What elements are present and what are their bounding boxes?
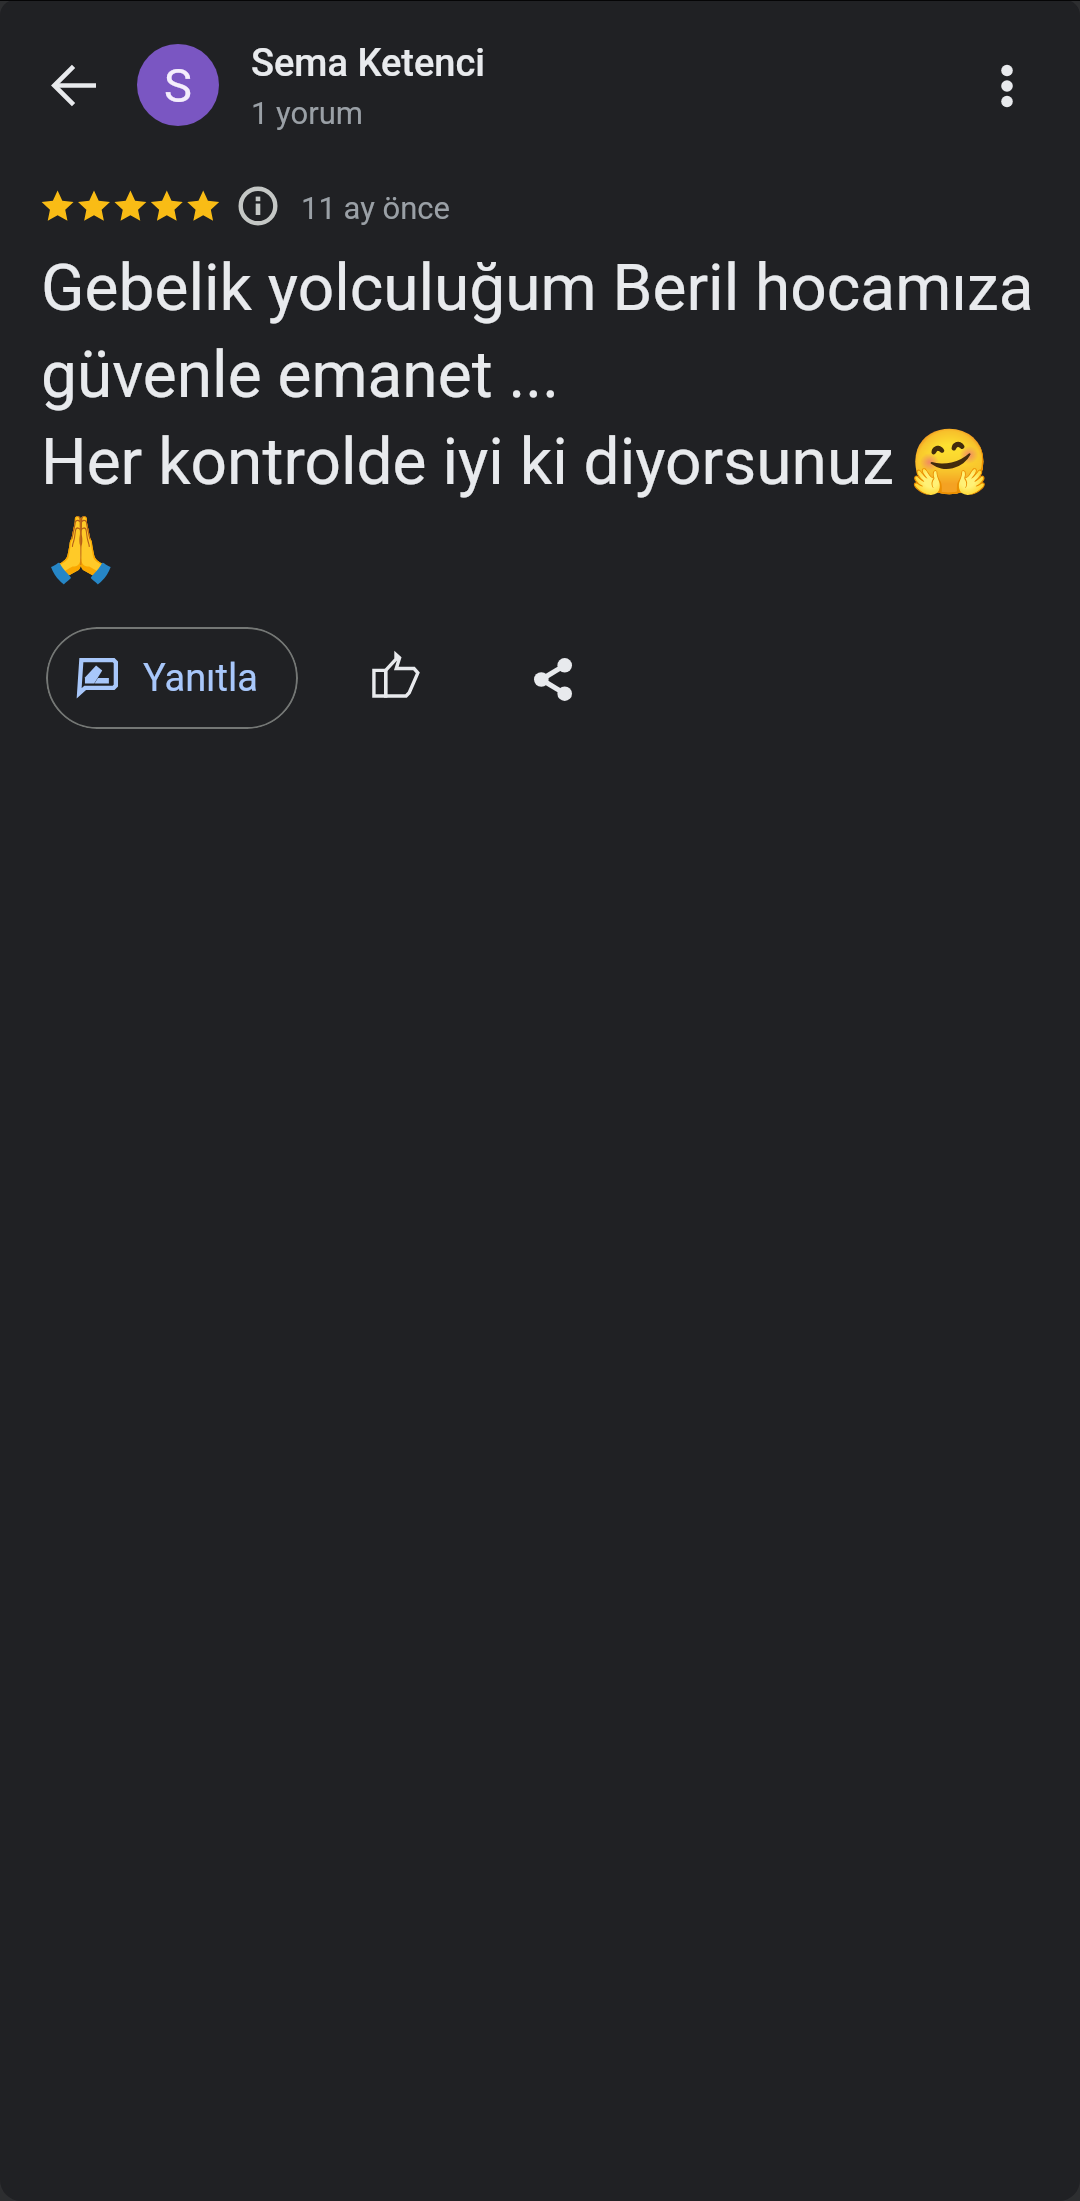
staticText: Gebelik yolculuğum Beril hocamıza güvenl…	[41, 241, 1046, 589]
button[interactable]: More options	[959, 38, 1055, 134]
button[interactable]: Back	[25, 37, 122, 134]
button[interactable]: Info	[233, 181, 283, 231]
staticText: 1 yorum	[251, 95, 364, 131]
staticText: 11 ay önce	[301, 190, 450, 226]
button[interactable]: Like	[348, 627, 444, 723]
staticText: Yanıtla	[143, 656, 258, 701]
button[interactable]: Yanıtla	[46, 627, 298, 729]
button[interactable]: S	[137, 44, 219, 126]
button[interactable]: Share	[505, 631, 601, 727]
staticText: Sema Ketenci	[251, 41, 485, 86]
staticText: S	[164, 58, 192, 113]
